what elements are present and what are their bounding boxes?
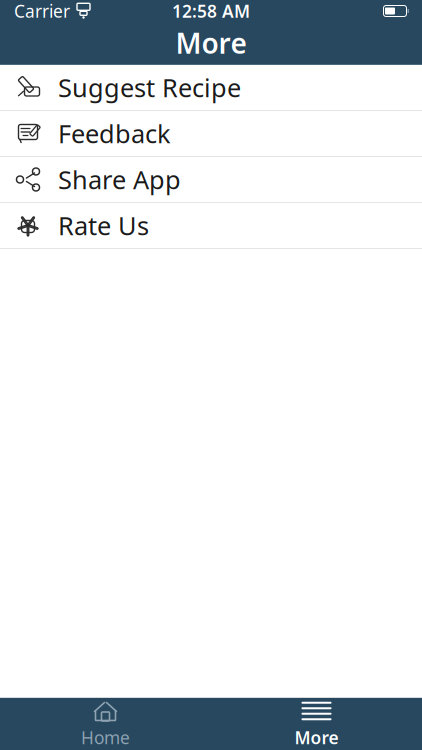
button[interactable]: Share App bbox=[0, 157, 422, 203]
button[interactable]: More bbox=[211, 698, 422, 750]
staticText: Carrier bbox=[14, 0, 70, 22]
staticText: Share App bbox=[58, 163, 181, 196]
button[interactable]: Home bbox=[0, 698, 211, 750]
button[interactable]: Rate Us bbox=[0, 203, 422, 249]
staticText: Home bbox=[81, 726, 130, 749]
button[interactable]: Suggest Recipe bbox=[0, 65, 422, 111]
staticText: 12:58 AM bbox=[172, 0, 250, 22]
staticText: Feedback bbox=[58, 117, 171, 150]
button[interactable]: Feedback bbox=[0, 111, 422, 157]
staticText: Rate Us bbox=[58, 209, 149, 242]
staticText: Suggest Recipe bbox=[58, 71, 241, 104]
staticText: More bbox=[175, 24, 246, 62]
staticText: More bbox=[294, 726, 338, 749]
